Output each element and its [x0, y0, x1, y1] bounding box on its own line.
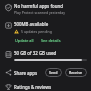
staticText: Send [49, 70, 58, 75]
other: Storage [3, 50, 14, 59]
button[interactable]: Share apps [0, 67, 91, 78]
other: Updates available [3, 21, 14, 30]
button[interactable]: Play Protect [0, 0, 91, 16]
other: Play Protect [3, 3, 14, 12]
staticText: Share apps [14, 70, 38, 76]
button[interactable]: Updates available [0, 20, 91, 45]
staticText: Receive [69, 70, 83, 75]
staticText: 50 GB of 32 GB used [14, 50, 57, 56]
button[interactable]: Receive [65, 68, 87, 77]
button[interactable]: Update all [14, 37, 35, 44]
button[interactable]: Send [45, 68, 62, 77]
staticText: See details [41, 38, 61, 43]
staticText: Ratings & reviews [14, 84, 52, 90]
button[interactable]: See details [40, 37, 62, 44]
staticText: Update all [15, 38, 34, 43]
staticText: No harmful apps found [14, 3, 63, 9]
staticText: 500MB available [14, 21, 49, 27]
button[interactable]: Ratings & reviews [0, 83, 91, 91]
staticText: 5 updates pending [21, 29, 52, 34]
button[interactable]: Storage [0, 49, 91, 62]
staticText: Play Protect scanned yesterday [14, 10, 66, 15]
